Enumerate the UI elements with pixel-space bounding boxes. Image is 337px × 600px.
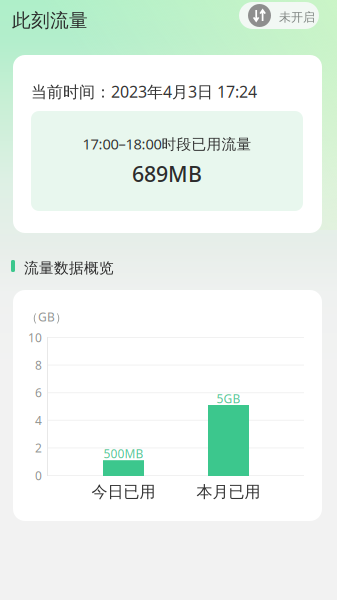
staticText: 0 bbox=[35, 467, 42, 483]
staticText: 689MB bbox=[132, 160, 202, 188]
button[interactable]: 流量开关：未开启 bbox=[239, 2, 319, 29]
staticText: 4 bbox=[35, 412, 42, 428]
staticText: 5GB bbox=[216, 390, 240, 406]
staticText: 2 bbox=[35, 440, 42, 456]
staticText: 此刻流量 bbox=[12, 9, 88, 32]
staticText: 流量数据概览 bbox=[24, 259, 114, 277]
staticText: 10 bbox=[28, 329, 42, 345]
staticText: 6 bbox=[35, 385, 42, 401]
staticText: 今日已用 bbox=[91, 482, 155, 502]
staticText: 未开启 bbox=[279, 10, 315, 25]
staticText: 8 bbox=[35, 357, 42, 373]
staticText: 500MB bbox=[103, 446, 143, 462]
staticText: 本月已用 bbox=[196, 482, 260, 502]
staticText: （GB） bbox=[26, 309, 67, 325]
staticText: 17:00–18:00时段已用流量 bbox=[82, 134, 251, 154]
staticText: 当前时间：2023年4月3日 17:24 bbox=[31, 81, 257, 102]
